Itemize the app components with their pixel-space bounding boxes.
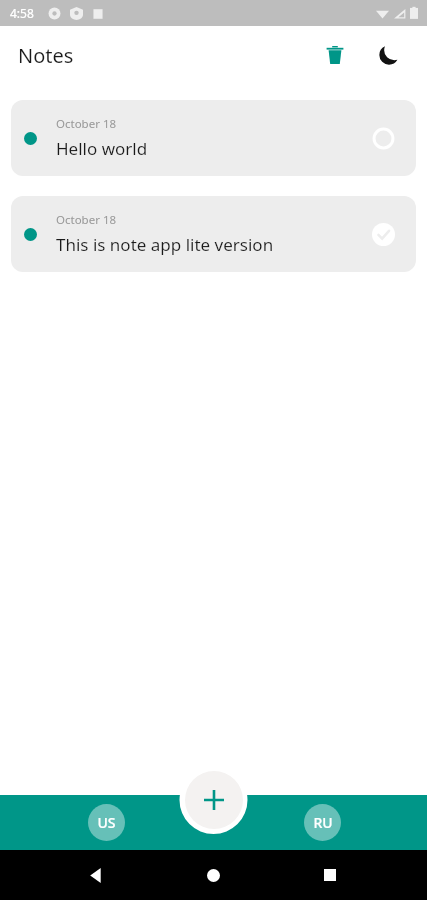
button[interactable]: Back [76,855,116,895]
button[interactable]: Toggle dark mode [367,33,411,77]
button[interactable]: Recent apps [310,855,350,895]
staticText: RU [313,813,333,832]
button[interactable]: October 18 [11,196,416,272]
button[interactable]: October 18 [11,100,416,176]
staticText: 4:58 [10,5,34,21]
staticText: Hello world [56,137,148,160]
button[interactable]: Mark as done [368,123,398,153]
staticText: This is note app lite version [56,233,274,256]
staticText: US [97,813,116,832]
button[interactable]: Home [193,855,233,895]
staticText: October 18 [56,212,117,228]
button[interactable]: US [88,804,125,841]
button[interactable]: Add note [185,771,243,829]
staticText: Notes [18,42,74,69]
button[interactable]: Delete notes [313,33,357,77]
staticText: October 18 [56,116,117,132]
button[interactable]: RU [304,804,341,841]
button[interactable]: Mark as not done [368,219,398,249]
